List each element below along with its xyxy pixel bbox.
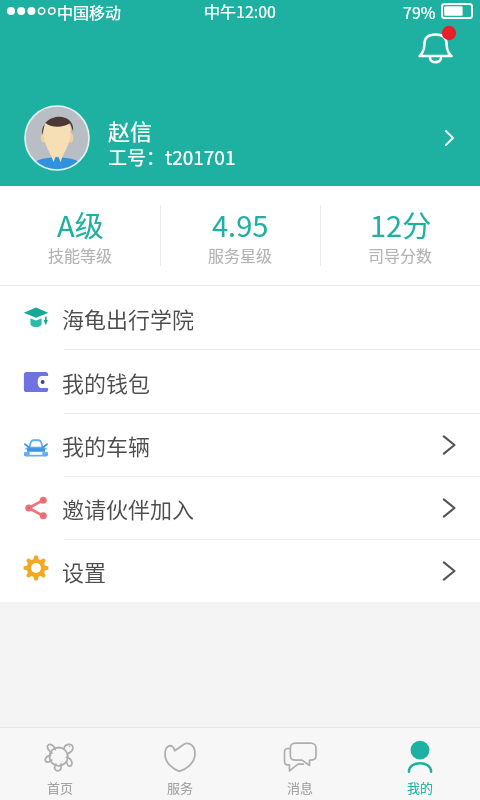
button[interactable]: Notifications: [412, 25, 460, 73]
staticText: A级: [57, 203, 104, 245]
staticText: 首页: [47, 778, 74, 797]
staticText: 中午12:00: [204, 0, 276, 21]
staticText: 工号：t201701: [108, 143, 236, 171]
staticText: 消息: [287, 778, 314, 797]
staticText: 4.95: [212, 203, 269, 245]
button[interactable]: 设置: [0, 540, 480, 602]
staticText: 我的: [407, 778, 434, 797]
button[interactable]: 赵信: [0, 96, 480, 180]
staticText: 司导分数: [368, 243, 433, 266]
staticText: 服务星级: [208, 243, 273, 266]
staticText: 海龟出行学院: [62, 302, 195, 334]
button[interactable]: 消息: [240, 728, 360, 800]
button[interactable]: A级: [0, 186, 160, 285]
button[interactable]: 邀请伙伴加入: [0, 477, 480, 539]
button[interactable]: 12分: [321, 186, 480, 285]
button[interactable]: 服务: [120, 728, 240, 800]
staticText: 我的车辆: [62, 429, 151, 461]
staticText: 技能等级: [48, 243, 113, 266]
button[interactable]: 我的钱包: [0, 350, 480, 413]
staticText: 我的钱包: [62, 366, 151, 398]
staticText: 设置: [62, 555, 107, 587]
staticText: 79%: [403, 0, 436, 22]
staticText: 邀请伙伴加入: [62, 492, 195, 524]
button[interactable]: 海龟出行学院: [0, 286, 480, 349]
staticText: 服务: [167, 778, 194, 797]
staticText: 赵信: [108, 114, 153, 146]
button[interactable]: 我的车辆: [0, 414, 480, 476]
button[interactable]: 4.95: [161, 186, 320, 285]
button[interactable]: 我的: [360, 728, 480, 800]
staticText: 12分: [370, 203, 432, 245]
staticText: 中国移动: [57, 0, 122, 22]
button[interactable]: 首页: [0, 728, 120, 800]
